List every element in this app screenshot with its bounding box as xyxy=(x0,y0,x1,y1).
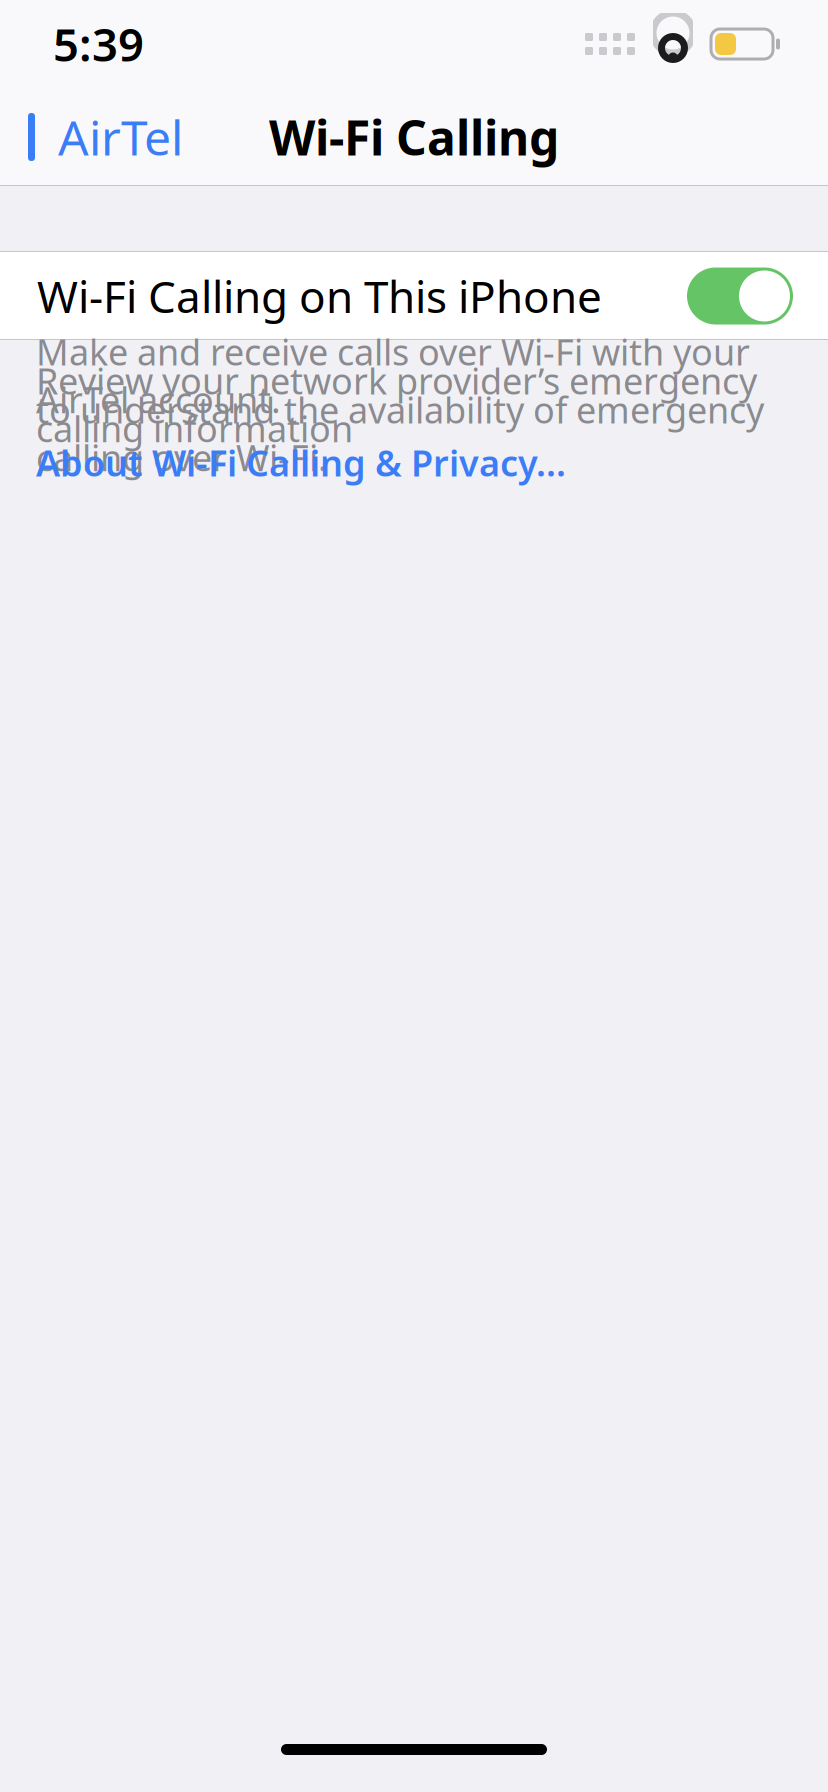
staticText: AirTel xyxy=(58,105,183,169)
button[interactable]: AirTel xyxy=(0,95,205,179)
staticText: Review your network provider’s emergency… xyxy=(36,357,757,452)
button[interactable]: Wi-Fi Calling on This iPhone xyxy=(0,252,828,340)
staticText: 5:39 xyxy=(53,14,144,74)
button[interactable]: About Wi-Fi Calling & Privacy... xyxy=(36,448,798,477)
staticText: Wi-Fi Calling xyxy=(269,105,559,169)
staticText: About Wi-Fi Calling & Privacy... xyxy=(36,439,566,486)
staticText: Make and receive calls over Wi-Fi with y… xyxy=(36,328,750,423)
staticText: to understand the availability of emerge… xyxy=(36,386,764,481)
staticText: Wi-Fi Calling on This iPhone xyxy=(37,267,602,325)
